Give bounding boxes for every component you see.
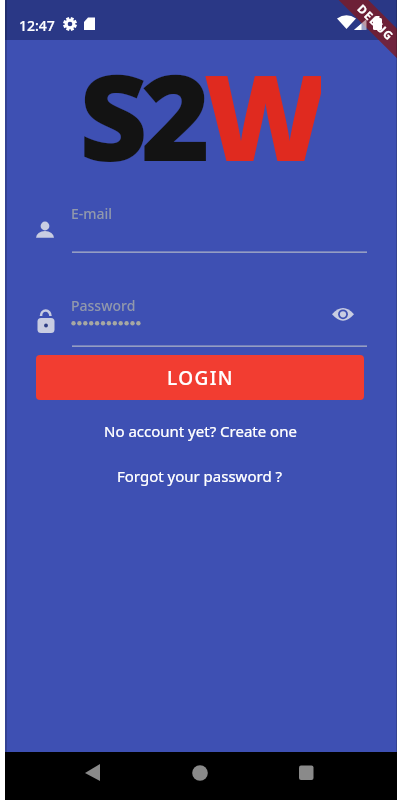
staticText: S2W [79, 34, 321, 177]
staticText: DEBUG [354, 1, 397, 45]
button[interactable]: Forgot your password ? [117, 466, 283, 486]
button[interactable] [186, 759, 214, 787]
staticText: 12:47 [19, 16, 55, 35]
staticText: LOGIN [167, 365, 234, 391]
staticText: E-mail [71, 204, 113, 223]
button[interactable] [78, 759, 106, 787]
staticText: Password [71, 296, 136, 315]
button[interactable]: LOGIN [36, 355, 364, 400]
button[interactable] [292, 759, 320, 787]
button[interactable]: No account yet? Create one [104, 421, 297, 441]
